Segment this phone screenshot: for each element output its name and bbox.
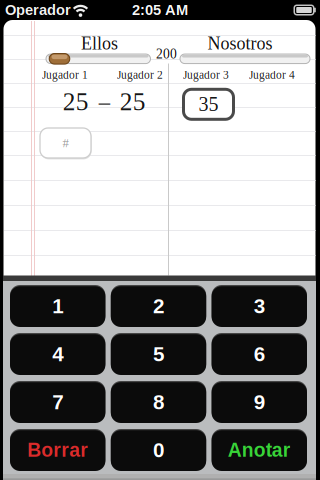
button[interactable]: Borrar [10, 429, 105, 471]
staticText: Borrar [27, 439, 88, 461]
button[interactable]: 5 [111, 333, 206, 375]
staticText: 25 [63, 88, 89, 116]
button[interactable]: Puntos Ellos [40, 128, 91, 158]
button[interactable]: 1 [10, 285, 105, 327]
button[interactable]: Marcador Ellos [46, 53, 150, 64]
staticText: 6 [254, 342, 265, 366]
staticText: 2 [153, 294, 164, 318]
staticText: 200 [156, 46, 177, 62]
staticText: 8 [153, 390, 164, 414]
staticText: 0 [153, 438, 164, 462]
staticText: Anotar [228, 439, 291, 461]
staticText: 4 [52, 342, 63, 366]
button[interactable]: 7 [10, 381, 105, 423]
staticText: Nosotros [207, 33, 272, 53]
button[interactable]: Puntos Nosotros [183, 89, 233, 119]
staticText: Jugador 3 [183, 69, 229, 81]
staticText: 9 [254, 390, 265, 414]
button[interactable]: Marcador Nosotros [180, 54, 310, 64]
button[interactable]: 8 [111, 381, 206, 423]
staticText: Jugador 2 [117, 69, 163, 81]
button[interactable]: 6 [212, 333, 307, 375]
staticText: 3 [254, 294, 265, 318]
staticText: # [62, 136, 68, 150]
button[interactable]: Anotar [212, 429, 307, 471]
staticText: 35 [198, 93, 218, 115]
staticText: 1 [52, 294, 63, 318]
staticText: 7 [52, 390, 63, 414]
button[interactable]: 0 [111, 429, 206, 471]
staticText: Ellos [81, 33, 118, 53]
button[interactable]: 4 [10, 333, 105, 375]
staticText: – [99, 89, 110, 114]
staticText: Operador [5, 2, 71, 18]
button[interactable]: 9 [212, 381, 307, 423]
staticText: Jugador 4 [249, 69, 295, 81]
button[interactable]: 2 [111, 285, 206, 327]
staticText: 25 [120, 88, 146, 116]
staticText: Jugador 1 [42, 69, 88, 81]
staticText: 2:05 AM [132, 2, 188, 18]
staticText: 5 [153, 342, 164, 366]
button[interactable]: 3 [212, 285, 307, 327]
